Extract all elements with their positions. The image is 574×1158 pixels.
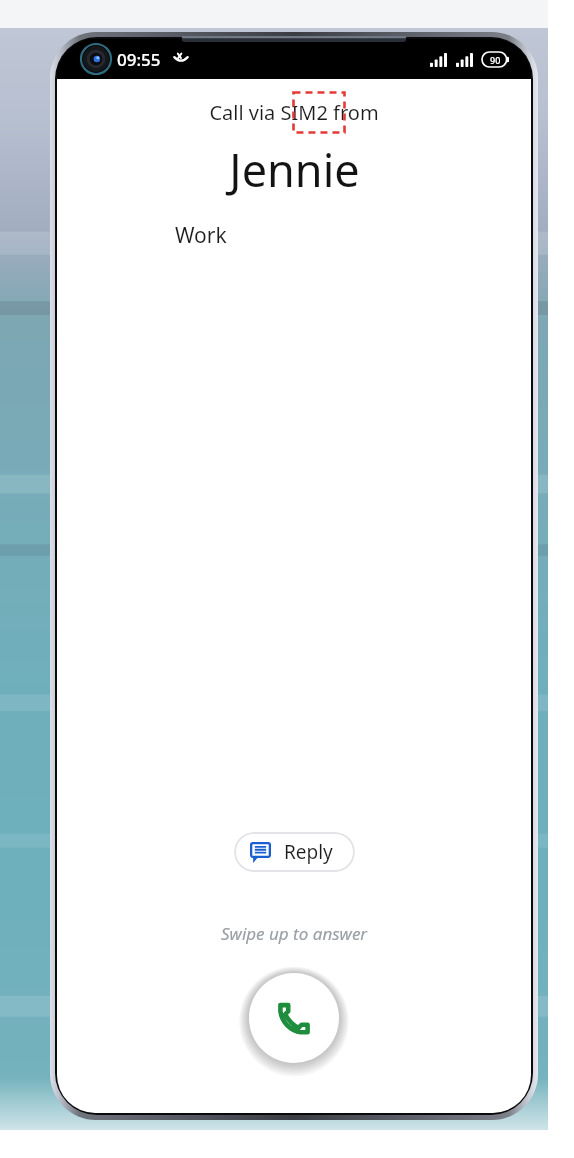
button[interactable]: Reply [234, 832, 355, 872]
staticText: Jennie [229, 139, 360, 200]
staticText: Reply [284, 839, 333, 865]
staticText: 90 [490, 54, 501, 66]
button[interactable]: Answer call [245, 969, 343, 1067]
staticText: Work [175, 221, 227, 250]
staticText: Call via SIM2 from [209, 99, 379, 126]
staticText: 09:55 [117, 48, 161, 71]
staticText: Swipe up to answer [221, 922, 368, 945]
